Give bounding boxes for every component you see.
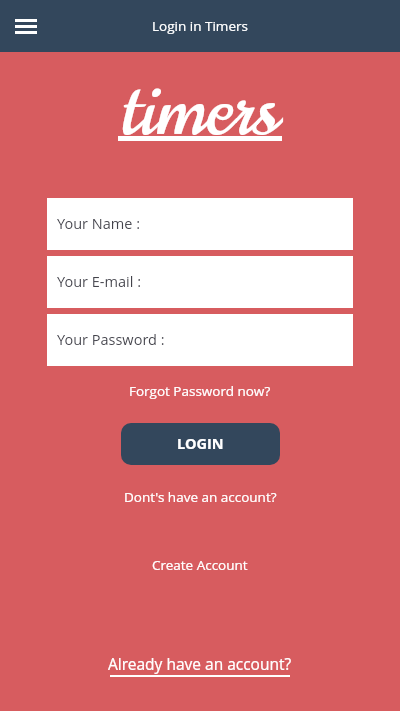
staticText: Your E-mail : [57,272,141,292]
staticText: Dont's have an account? [124,488,277,506]
button[interactable]: Already have an account? [108,653,292,677]
button[interactable]: LOGIN [121,423,280,465]
button[interactable]: Create Account [152,554,248,576]
staticText: Your Password : [57,330,165,350]
button[interactable]: Forgot Password now? [129,381,271,401]
staticText: Forgot Password now? [129,382,271,400]
staticText: Already have an account? [108,653,292,674]
button[interactable]: Your Name : [47,198,353,250]
button[interactable]: Your E-mail : [47,256,353,308]
button[interactable]: Your Password : [47,314,353,366]
staticText: Create Account [152,556,248,574]
staticText: Your Name : [57,214,140,234]
staticText: Login in Timers [152,17,248,35]
staticText: timers [122,59,279,162]
button[interactable] [8,8,44,44]
staticText: LOGIN [177,434,224,454]
